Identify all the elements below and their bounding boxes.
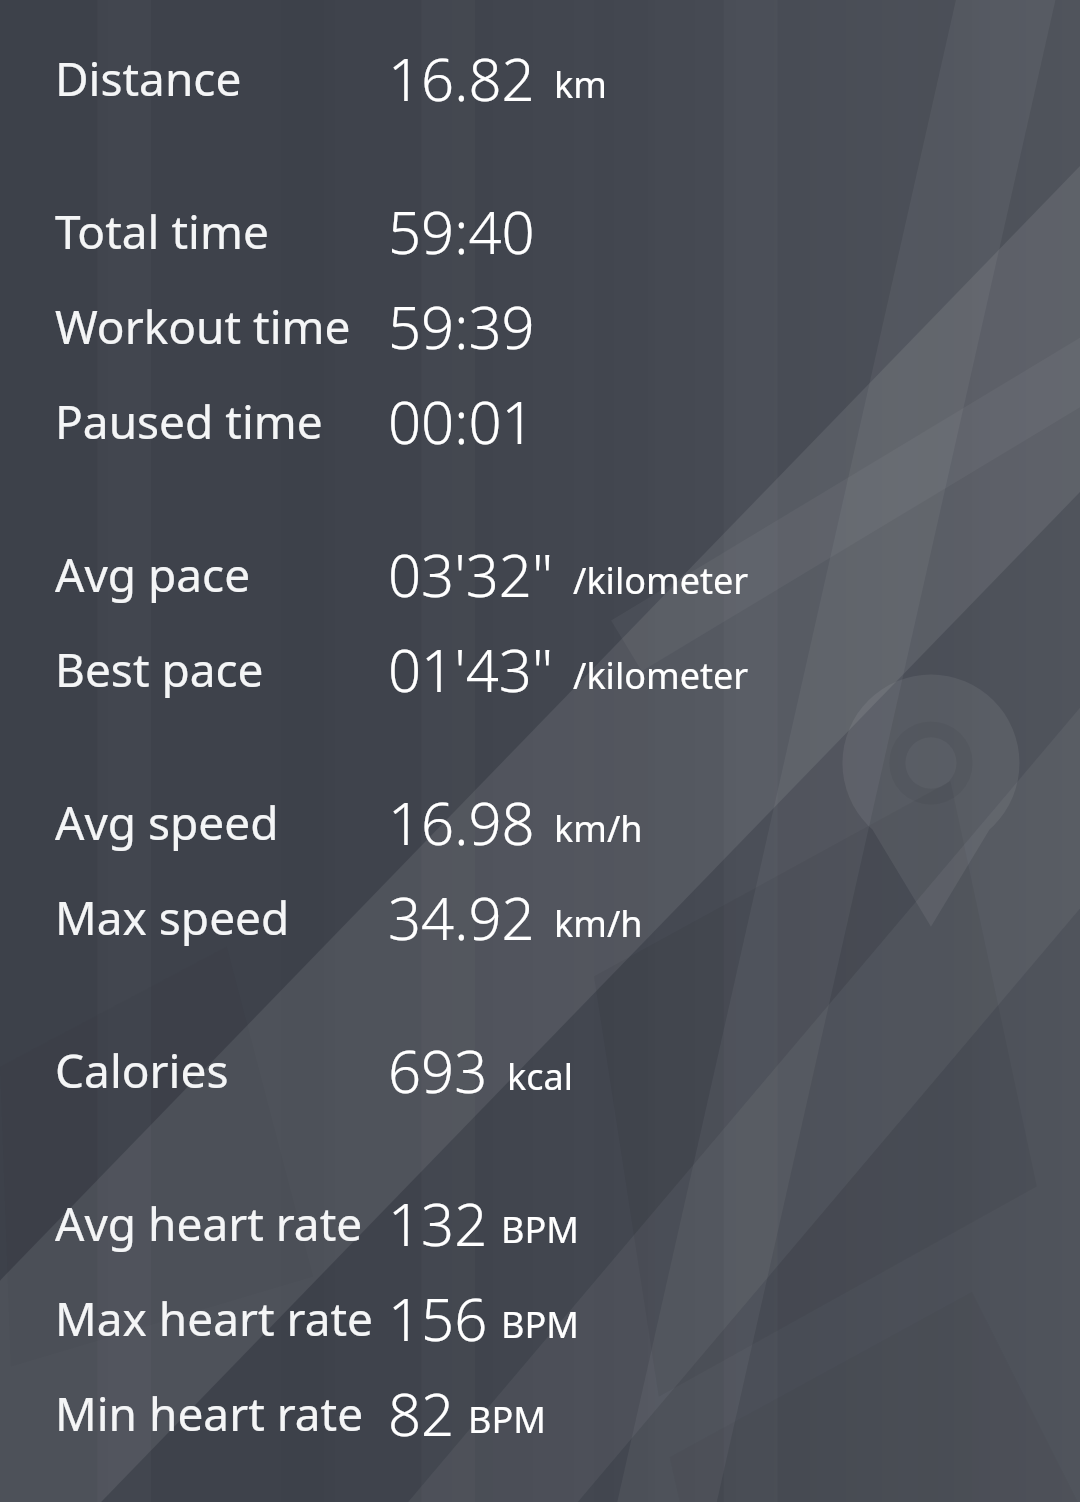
staticText: 34.92 [388,878,535,957]
staticText: 59:39 [388,287,535,366]
button[interactable]: Best pace [0,622,1080,717]
button[interactable]: Min heart rate [0,1366,1080,1461]
button[interactable]: Calories [0,1023,1080,1118]
staticText: Avg pace [55,543,251,606]
staticText: 03'32" [388,535,554,614]
staticText: /kilometer [573,556,749,605]
staticText: 16.82 [388,39,535,118]
staticText: 01'43" [388,630,554,709]
staticText: Calories [55,1039,229,1102]
staticText: km/h [554,804,643,853]
button[interactable]: Avg heart rate [0,1176,1080,1271]
button[interactable]: Max heart rate [0,1271,1080,1366]
staticText: 59:40 [388,192,535,271]
staticText: /kilometer [573,651,749,700]
staticText: BPM [468,1395,546,1444]
staticText: BPM [501,1300,579,1349]
staticText: 132 [388,1184,488,1263]
staticText: 693 [388,1031,488,1110]
staticText: Total time [55,200,269,263]
staticText: km [554,60,607,109]
staticText: Max speed [55,886,290,949]
button[interactable]: Workout time [0,279,1080,374]
staticText: 00:01 [388,382,535,461]
button[interactable]: Total time [0,184,1080,279]
staticText: Paused time [55,390,323,453]
staticText: BPM [501,1205,579,1254]
staticText: Distance [55,47,242,110]
staticText: km/h [554,899,643,948]
staticText: 16.98 [388,783,535,862]
staticText: Avg speed [55,791,279,854]
button[interactable]: Paused time [0,374,1080,469]
staticText: Best pace [55,638,264,701]
button[interactable]: Avg pace [0,527,1080,622]
button[interactable]: Max speed [0,870,1080,965]
staticText: kcal [507,1052,573,1101]
staticText: Min heart rate [55,1382,364,1445]
staticText: Workout time [55,295,351,358]
staticText: 82 [388,1374,455,1453]
staticText: 156 [388,1279,488,1358]
button[interactable]: Distance [0,31,1080,126]
button[interactable]: Avg speed [0,775,1080,870]
staticText: Avg heart rate [55,1192,363,1255]
staticText: Max heart rate [55,1287,373,1350]
